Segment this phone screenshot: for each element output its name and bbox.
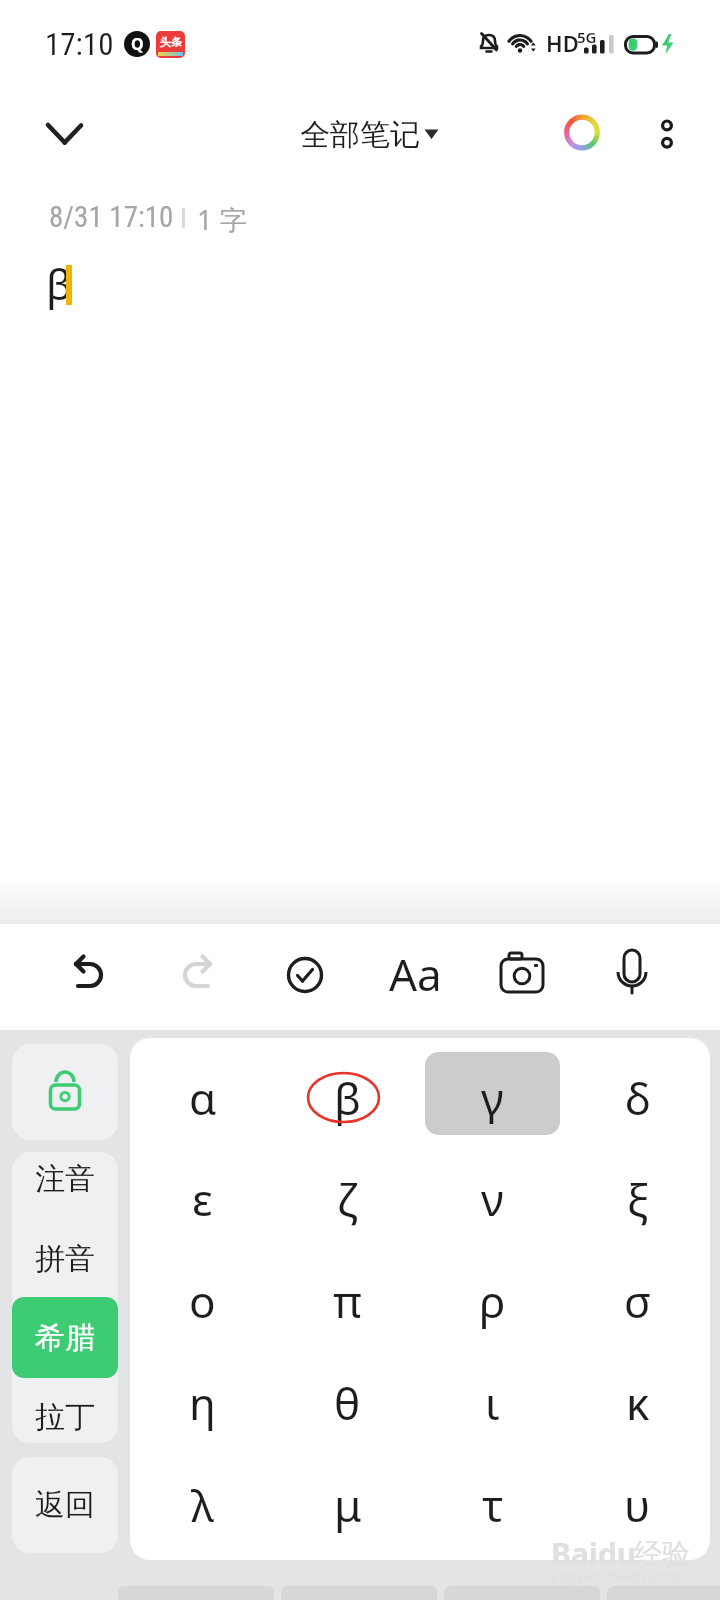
button[interactable]: 希腊 xyxy=(12,1297,118,1378)
staticText: β xyxy=(46,255,72,312)
staticText: Baidu xyxy=(551,1533,637,1574)
button[interactable]: 注音 xyxy=(12,1152,118,1206)
button[interactable]: 返回 xyxy=(12,1457,118,1553)
button[interactable]: δ xyxy=(565,1046,710,1150)
staticText: η xyxy=(189,1373,216,1433)
staticText: ξ xyxy=(627,1169,649,1229)
staticText: 1 字 xyxy=(197,201,247,238)
button[interactable]: ο xyxy=(130,1249,275,1353)
button[interactable]: ζ xyxy=(275,1147,420,1251)
button[interactable] xyxy=(36,112,92,158)
button[interactable] xyxy=(599,940,665,1006)
staticText: Aa xyxy=(389,944,442,1004)
staticText: γ xyxy=(481,1068,504,1128)
staticText: α xyxy=(189,1068,217,1128)
button[interactable]: π xyxy=(275,1249,420,1353)
staticText: ε xyxy=(192,1169,213,1229)
button[interactable]: α xyxy=(130,1046,275,1150)
button[interactable]: η xyxy=(130,1351,275,1455)
button[interactable]: τ xyxy=(420,1453,565,1557)
staticText: 经验 xyxy=(634,1536,690,1571)
button[interactable]: ξ xyxy=(565,1147,710,1251)
staticText: π xyxy=(333,1271,362,1331)
staticText: ο xyxy=(189,1271,216,1331)
button[interactable] xyxy=(165,942,231,1008)
staticText: β xyxy=(334,1068,361,1128)
staticText: 返回 xyxy=(35,1486,95,1524)
staticText: ν xyxy=(481,1169,504,1229)
staticText: 注音 xyxy=(35,1160,95,1198)
button[interactable]: υ xyxy=(565,1453,710,1557)
staticText: μ xyxy=(334,1475,362,1535)
button[interactable]: ι xyxy=(420,1351,565,1455)
button[interactable] xyxy=(55,942,121,1008)
button[interactable]: λ xyxy=(130,1453,275,1557)
staticText: κ xyxy=(626,1373,650,1433)
button[interactable] xyxy=(645,108,689,160)
staticText: λ xyxy=(191,1475,214,1535)
button[interactable] xyxy=(272,942,338,1008)
button[interactable]: Aa xyxy=(375,941,455,1007)
staticText: δ xyxy=(625,1068,651,1128)
staticText: 全部笔记 xyxy=(300,116,420,154)
staticText: 8/31 17:10 xyxy=(49,200,174,234)
staticText: υ xyxy=(624,1475,651,1535)
button[interactable]: κ xyxy=(565,1351,710,1455)
button[interactable]: 拼音 xyxy=(12,1232,118,1286)
staticText: 拼音 xyxy=(35,1240,95,1278)
staticText: 17:10 xyxy=(45,26,114,62)
button[interactable]: β xyxy=(275,1046,420,1150)
button[interactable] xyxy=(12,1044,118,1140)
button[interactable] xyxy=(489,942,555,1008)
button[interactable]: ρ xyxy=(420,1249,565,1353)
staticText: ρ xyxy=(479,1271,506,1331)
staticText: θ xyxy=(334,1373,361,1433)
staticText: 希腊 xyxy=(35,1319,95,1357)
staticText: σ xyxy=(624,1271,652,1331)
staticText: Q xyxy=(131,33,144,55)
staticText: 5G xyxy=(577,27,597,47)
staticText: τ xyxy=(482,1475,504,1535)
button[interactable]: γ xyxy=(420,1046,565,1150)
staticText: HD xyxy=(546,28,579,58)
button[interactable]: 全部笔记 xyxy=(290,112,450,158)
button[interactable] xyxy=(560,111,604,155)
staticText: 拉丁 xyxy=(35,1398,95,1436)
button[interactable]: 拉丁 xyxy=(12,1390,118,1444)
button[interactable]: ν xyxy=(420,1147,565,1251)
staticText: ζ xyxy=(337,1169,358,1229)
staticText: ι xyxy=(485,1373,500,1433)
button[interactable]: ε xyxy=(130,1147,275,1251)
button[interactable]: σ xyxy=(565,1249,710,1353)
staticText: 头条 xyxy=(160,35,182,49)
button[interactable]: μ xyxy=(275,1453,420,1557)
button[interactable]: θ xyxy=(275,1351,420,1455)
